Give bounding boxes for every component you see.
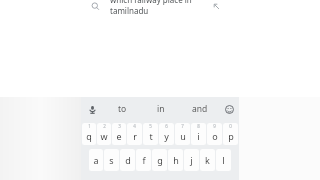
staticText: h	[173, 154, 179, 166]
button[interactable]: h	[168, 149, 183, 171]
button[interactable]: 2	[97, 123, 111, 145]
staticText: and	[192, 103, 208, 115]
button[interactable]: Search	[89, 0, 101, 12]
staticText: 6	[165, 123, 168, 129]
staticText: f	[142, 154, 146, 166]
staticText: u	[180, 130, 186, 142]
staticText: 9	[213, 123, 216, 129]
staticText: j	[190, 154, 193, 166]
button[interactable]: Voice input	[81, 97, 103, 121]
button[interactable]: and	[180, 97, 219, 121]
staticText: a	[93, 154, 99, 166]
staticText: to	[118, 103, 127, 115]
button[interactable]: f	[136, 149, 151, 171]
button[interactable]: Emoji	[219, 97, 239, 121]
button[interactable]: 6	[159, 123, 174, 145]
staticText: tamilnadu	[110, 5, 149, 16]
button[interactable]: 8	[191, 123, 206, 145]
staticText: r	[133, 130, 137, 142]
staticText: s	[109, 154, 114, 166]
button[interactable]: d	[120, 149, 135, 171]
button[interactable]: in	[141, 97, 180, 121]
staticText: 0	[229, 123, 232, 129]
staticText: 7	[181, 123, 184, 129]
button[interactable]: a	[89, 149, 103, 171]
button[interactable]: k	[200, 149, 215, 171]
button[interactable]: 1	[82, 123, 96, 145]
button[interactable]: 5	[143, 123, 158, 145]
button[interactable]: l	[216, 149, 231, 171]
staticText: o	[212, 130, 218, 142]
staticText: 3	[118, 123, 121, 129]
staticText: 8	[197, 123, 200, 129]
button[interactable]: 9	[207, 123, 222, 145]
staticText: 4	[133, 123, 136, 129]
button[interactable]: s	[104, 149, 119, 171]
staticText: 2	[103, 123, 106, 129]
staticText: q	[86, 130, 92, 142]
button[interactable]: g	[152, 149, 167, 171]
staticText: y	[164, 130, 169, 142]
button[interactable]: 3	[112, 123, 126, 145]
button[interactable]: 4	[127, 123, 142, 145]
staticText: in	[157, 103, 165, 115]
staticText: which railway place in	[110, 0, 192, 5]
button[interactable]: 0	[223, 123, 238, 145]
staticText: k	[205, 154, 210, 166]
staticText: i	[197, 130, 200, 142]
staticText: g	[157, 154, 163, 166]
button[interactable]: which railway place in	[110, 0, 210, 16]
staticText: t	[149, 130, 153, 142]
staticText: 5	[149, 123, 152, 129]
button[interactable]: Insert suggestion	[210, 0, 222, 12]
staticText: p	[228, 130, 234, 142]
staticText: w	[100, 130, 108, 142]
staticText: e	[116, 130, 122, 142]
staticText: d	[125, 154, 131, 166]
button[interactable]: to	[103, 97, 141, 121]
staticText: 1	[88, 123, 91, 129]
button[interactable]: 7	[175, 123, 190, 145]
button[interactable]: j	[184, 149, 199, 171]
staticText: l	[222, 154, 225, 166]
